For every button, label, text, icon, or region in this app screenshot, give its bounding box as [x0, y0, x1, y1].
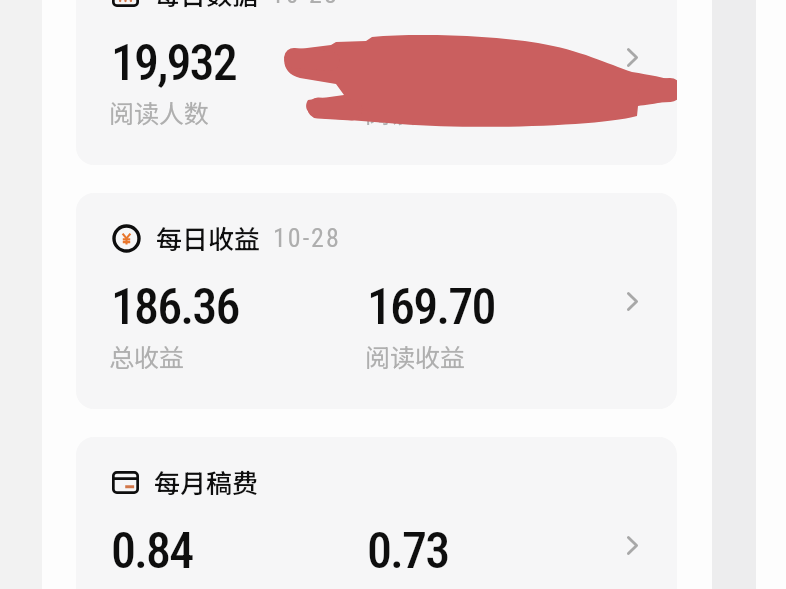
staticText: 0.73 — [367, 522, 449, 581]
button[interactable]: View details — [604, 273, 660, 329]
staticText: 10-28 — [273, 223, 341, 253]
staticText: 阅读人数 — [109, 94, 210, 130]
staticText: 19,932 — [111, 34, 236, 93]
staticText: 阅读量 — [365, 94, 441, 130]
staticText: 总收益 — [109, 338, 185, 374]
button[interactable]: 每日数据 — [76, 0, 677, 165]
staticText: 每日数据 — [154, 0, 259, 13]
staticText: 阅读收益 — [365, 338, 466, 374]
staticText: 0.84 — [111, 522, 193, 581]
staticText: 186.36 — [111, 278, 239, 337]
button[interactable]: 每日收益 — [76, 193, 677, 409]
button[interactable]: 每月稿费 — [76, 437, 677, 589]
staticText: 每月稿费 — [154, 463, 259, 501]
button[interactable]: View details — [604, 29, 660, 85]
staticText: 每日收益 — [156, 219, 261, 257]
button[interactable]: View details — [604, 517, 660, 573]
staticText: 169.70 — [367, 278, 495, 337]
staticText: 10-28 — [271, 0, 339, 9]
